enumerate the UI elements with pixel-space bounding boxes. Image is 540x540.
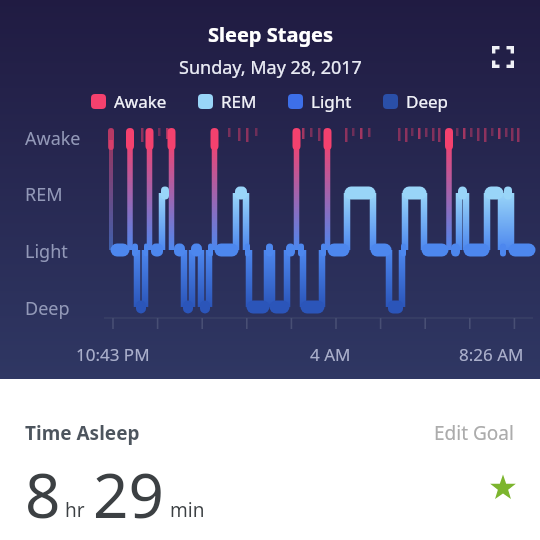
staticText: 8 [25,452,61,536]
staticText: hr [65,497,85,523]
staticText: Sleep Stages [208,21,333,48]
staticText: Light [311,90,352,113]
staticText: Light [25,239,68,264]
staticText: Time Asleep [25,420,140,446]
button[interactable] [486,40,520,74]
staticText: min [170,497,205,523]
staticText: 8:26 AM [459,343,524,366]
staticText: Deep [406,90,449,113]
staticText: Sunday, May 28, 2017 [179,55,362,80]
staticText: REM [221,90,257,113]
button[interactable]: Awake [91,90,167,113]
button[interactable]: Deep [383,90,449,113]
staticText: 29 [93,452,164,536]
button[interactable]: Light [288,90,352,113]
button[interactable] [486,471,520,505]
button[interactable]: REM [198,90,257,113]
button[interactable]: Edit Goal [420,415,500,441]
staticText: 4 AM [310,343,351,366]
staticText: Edit Goal [434,420,514,446]
staticText: Deep [25,296,70,321]
staticText: Awake [25,126,81,151]
staticText: Awake [114,90,167,113]
staticText: REM [25,182,63,207]
staticText: 10:43 PM [76,343,150,366]
